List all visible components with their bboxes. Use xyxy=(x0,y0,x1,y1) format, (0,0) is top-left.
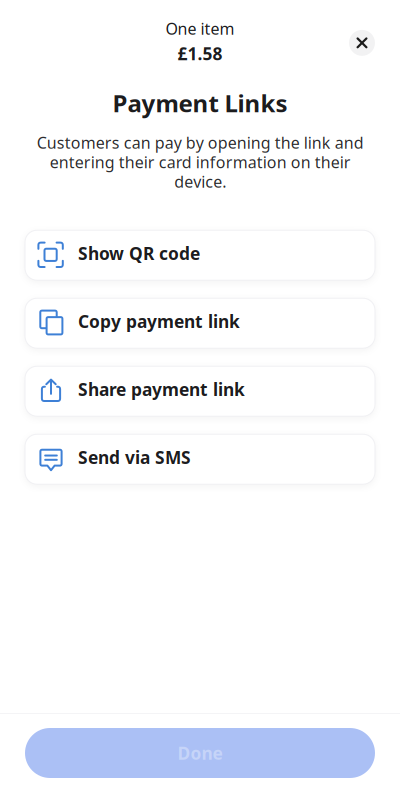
button[interactable]: Close xyxy=(342,23,382,63)
staticText: Share payment link xyxy=(78,378,245,401)
staticText: Copy payment link xyxy=(78,310,240,333)
button[interactable]: Done xyxy=(25,728,375,778)
staticText: £1.58 xyxy=(177,42,222,65)
staticText: Show QR code xyxy=(78,242,200,265)
button[interactable]: Share payment link xyxy=(25,366,375,416)
button[interactable]: Send via SMS xyxy=(25,434,375,484)
staticText: Customers can pay by opening the link an… xyxy=(36,132,363,192)
button[interactable]: Copy payment link xyxy=(25,298,375,348)
staticText: Done xyxy=(177,741,222,764)
staticText: Send via SMS xyxy=(78,446,191,469)
staticText: Payment Links xyxy=(112,87,287,119)
button[interactable]: Show QR code xyxy=(25,230,375,280)
staticText: One item xyxy=(165,18,234,39)
